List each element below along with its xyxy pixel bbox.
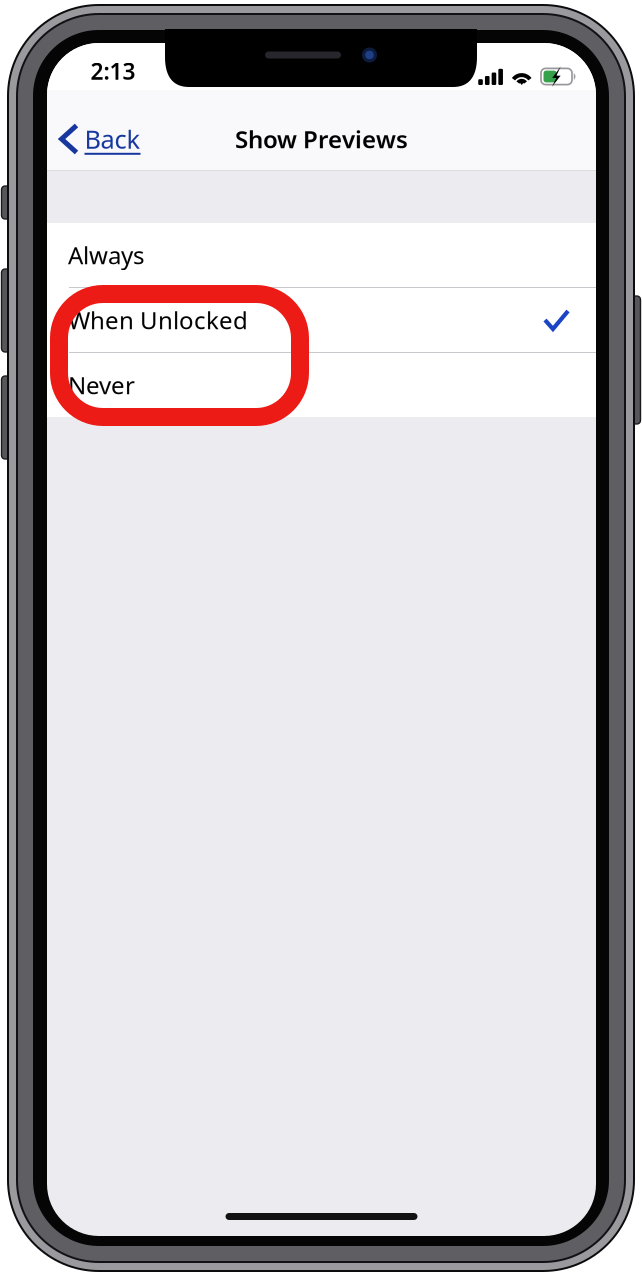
button[interactable]: Back	[47, 117, 150, 161]
button[interactable]: When Unlocked	[47, 288, 596, 352]
staticText: When Unlocked	[68, 304, 248, 336]
staticText: Show Previews	[235, 123, 408, 155]
button[interactable]: Always	[47, 223, 596, 287]
staticText: 2:13	[90, 56, 135, 86]
staticText: Back	[84, 122, 140, 156]
button[interactable]: Never	[47, 353, 596, 417]
staticText: Never	[68, 369, 135, 401]
staticText: Always	[68, 239, 144, 271]
